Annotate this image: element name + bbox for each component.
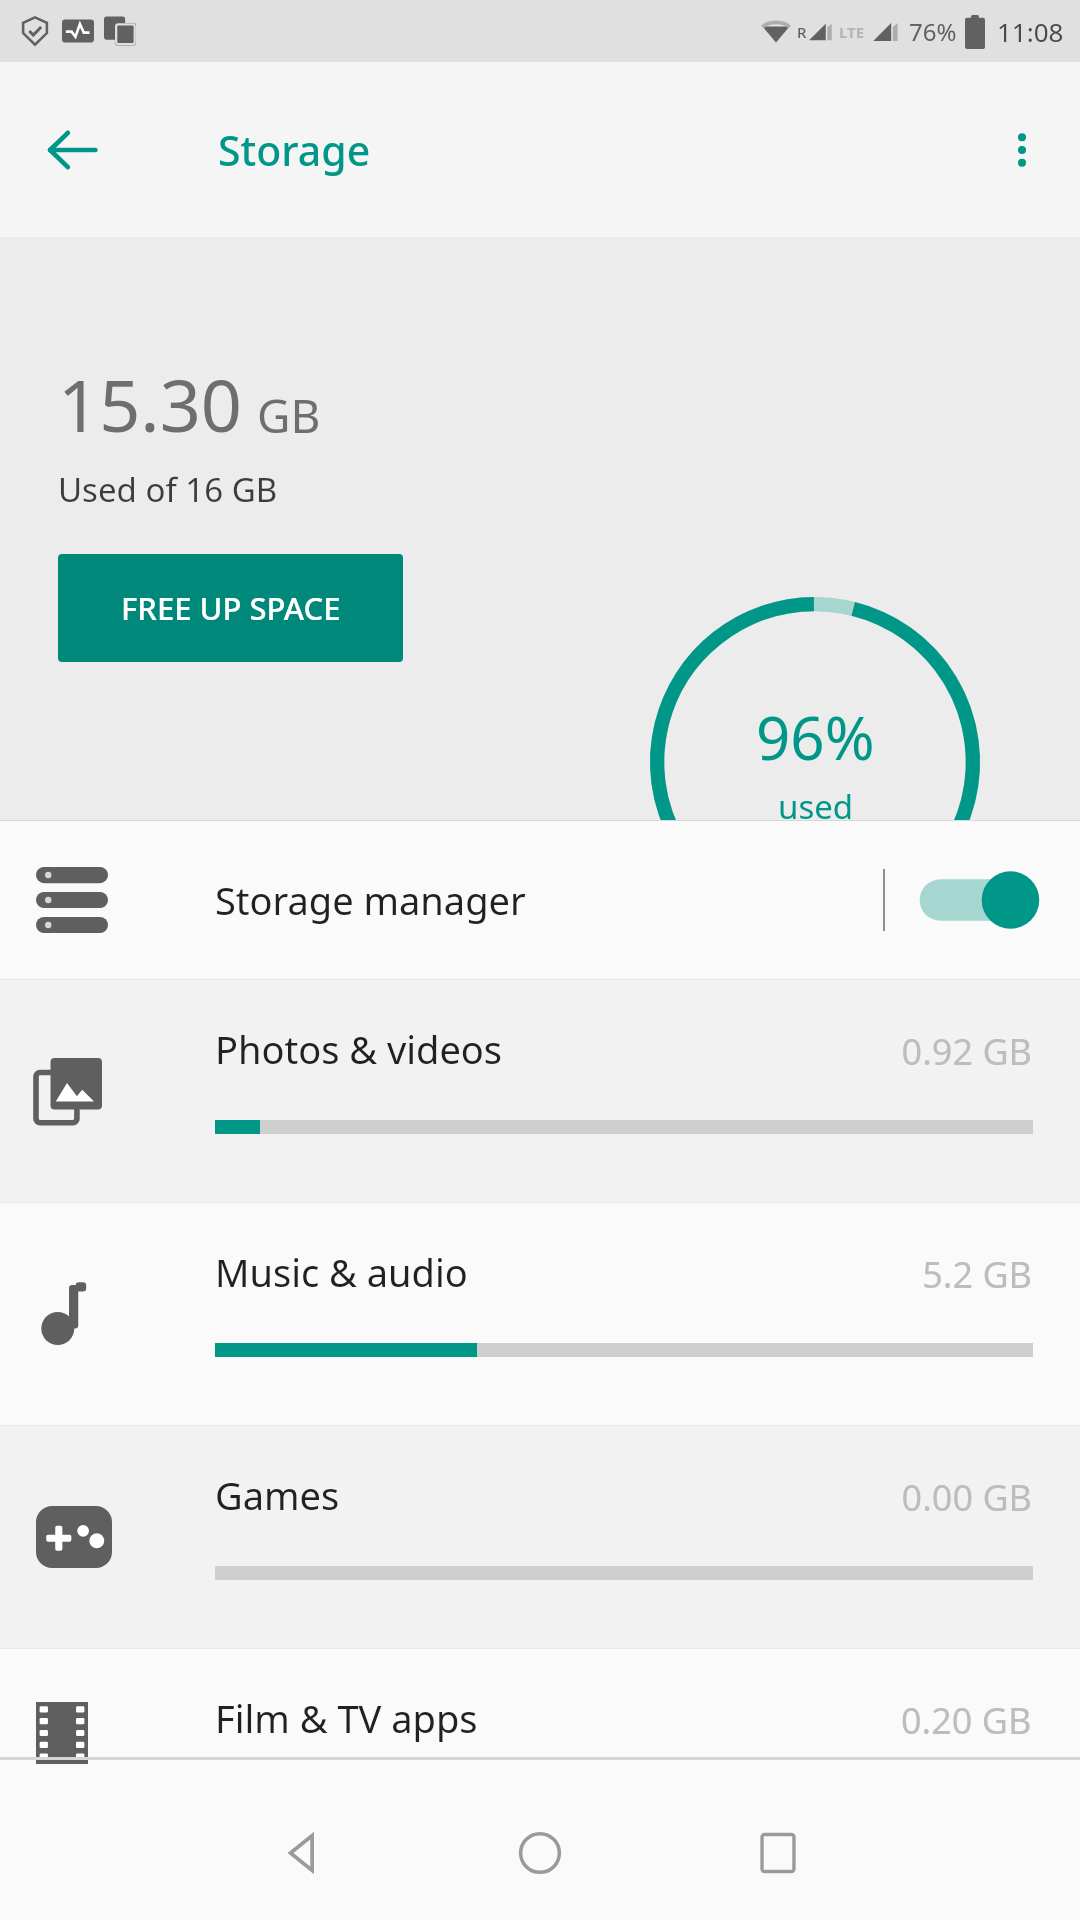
staticText: 11:08 [997, 14, 1064, 49]
staticText: 96% [756, 696, 875, 778]
staticText: Music & audio [215, 1246, 468, 1298]
staticText: Photos & videos [215, 1023, 503, 1075]
button[interactable]: Recent apps [718, 1793, 838, 1913]
button[interactable]: Storage manager [0, 821, 1080, 979]
staticText: Games [215, 1469, 340, 1521]
staticText: Storage manager [215, 874, 526, 926]
staticText: GB [257, 384, 321, 447]
staticText: FREE UP SPACE [121, 587, 341, 629]
staticText: Film & TV apps [215, 1692, 478, 1744]
staticText: 0.92 GB [901, 1027, 1032, 1076]
staticText: 0.20 GB [901, 1696, 1032, 1745]
staticText: 76% [909, 15, 957, 48]
button[interactable]: Film & TV apps [0, 1649, 1080, 1757]
button[interactable]: Back [242, 1793, 362, 1913]
staticText: 15.30 [58, 355, 243, 453]
button[interactable]: Back [30, 108, 114, 192]
staticText: used [778, 784, 854, 829]
staticText: R [797, 22, 807, 42]
button[interactable]: Storage manager toggle [908, 855, 1038, 945]
button[interactable]: Home [480, 1793, 600, 1913]
staticText: 0.00 GB [901, 1473, 1032, 1522]
button[interactable]: More options [982, 110, 1062, 190]
button[interactable]: Photos & videos [0, 980, 1080, 1202]
button[interactable]: Music & audio [0, 1203, 1080, 1425]
button[interactable]: Games [0, 1426, 1080, 1648]
staticText: Used of 16 GB [58, 467, 278, 512]
staticText: LTE [839, 22, 865, 42]
staticText: Storage [218, 122, 371, 178]
staticText: 5.2 GB [922, 1250, 1032, 1299]
button[interactable]: FREE UP SPACE [58, 554, 403, 662]
